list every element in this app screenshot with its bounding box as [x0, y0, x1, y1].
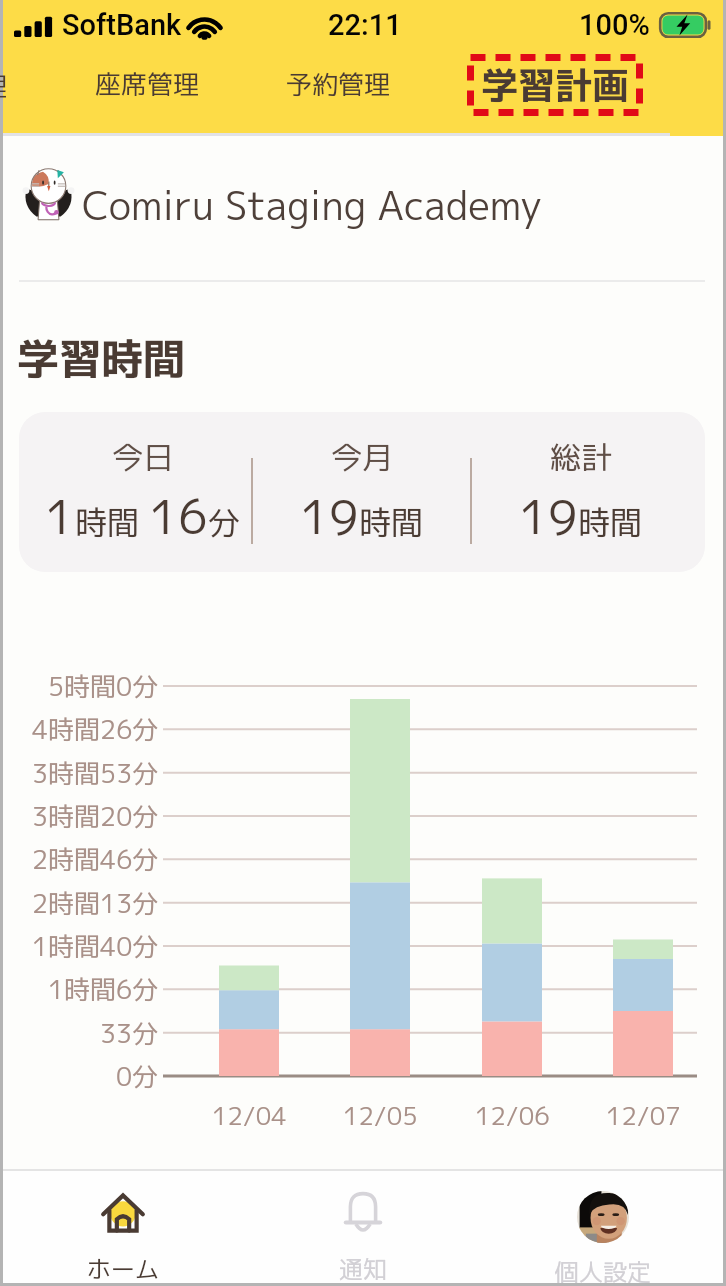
button[interactable]: 予約管理: [263, 53, 413, 115]
other: 通知: [342, 1191, 384, 1235]
staticText: 時間: [75, 500, 149, 545]
staticText: 1時間6分: [48, 971, 159, 1007]
staticText: 16: [149, 483, 208, 549]
staticText: 19: [300, 483, 359, 549]
staticText: 1: [45, 483, 75, 549]
button[interactable]: 座席管理: [72, 53, 222, 115]
staticText: 個人設定: [555, 1255, 651, 1283]
staticText: 12/06: [475, 1098, 550, 1133]
staticText: 座席管理: [95, 66, 200, 102]
staticText: 2時間46分: [32, 841, 159, 877]
staticText: 1時間40分: [32, 928, 159, 964]
staticText: 5時間0分: [48, 668, 159, 704]
staticText: 33分: [100, 1015, 159, 1051]
staticText: 100%: [579, 8, 650, 42]
staticText: 時間: [578, 500, 643, 545]
staticText: 予約管理: [286, 66, 391, 102]
staticText: 3時間20分: [32, 798, 159, 834]
staticText: 12/05: [343, 1098, 418, 1133]
staticText: SoftBank: [62, 8, 182, 42]
staticText: ホーム: [87, 1252, 159, 1283]
staticText: 今日: [112, 436, 174, 479]
staticText: 2時間13分: [32, 885, 159, 921]
staticText: 12/07: [606, 1098, 681, 1133]
staticText: 学習時間: [17, 329, 186, 388]
staticText: 理: [0, 68, 8, 104]
staticText: 4時間26分: [32, 711, 159, 747]
other: ホーム: [101, 1191, 145, 1235]
staticText: 3時間53分: [32, 755, 159, 791]
button[interactable]: 学習計画: [467, 54, 643, 116]
staticText: 19: [519, 483, 578, 549]
staticText: 時間: [359, 500, 424, 545]
other: 個人設定: [577, 1191, 629, 1243]
staticText: 分: [208, 500, 241, 545]
staticText: 22:11: [328, 8, 402, 42]
button[interactable]: 通知: [243, 1171, 483, 1283]
staticText: 通知: [339, 1252, 387, 1283]
staticText: 学習計画: [481, 59, 629, 111]
staticText: 総計: [550, 436, 612, 479]
staticText: Comiru Staging Academy: [82, 178, 543, 232]
staticText: 0分: [116, 1058, 159, 1094]
button[interactable]: 個人設定: [483, 1171, 723, 1283]
staticText: 今月: [331, 436, 393, 479]
button[interactable]: ホーム: [3, 1171, 243, 1283]
staticText: 12/04: [212, 1098, 287, 1133]
